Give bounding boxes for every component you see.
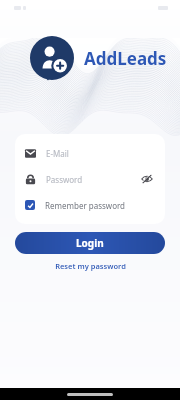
button[interactable]: Reset my password (15, 261, 165, 271)
button[interactable]: Remember password (25, 195, 155, 215)
staticText: Reset my password (55, 261, 126, 271)
button[interactable]: Password (25, 169, 155, 189)
staticText: Login (76, 236, 104, 250)
button[interactable]: Show password (139, 171, 155, 187)
button[interactable]: E-Mail (25, 143, 155, 163)
button[interactable]: Login (15, 232, 165, 254)
staticText: AddLeads (84, 47, 167, 70)
staticText: E-Mail (46, 148, 69, 159)
staticText: Password (46, 174, 139, 185)
staticText: Remember password (45, 200, 126, 211)
